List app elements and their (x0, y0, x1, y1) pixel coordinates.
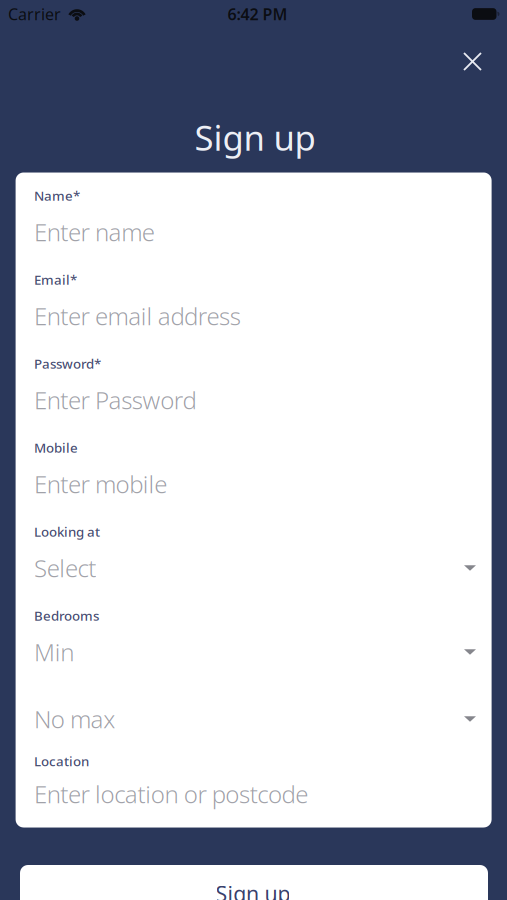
staticText: Enter mobile (34, 468, 167, 500)
staticText: Password* (34, 355, 101, 372)
staticText: Sign up (216, 879, 290, 900)
staticText: Enter name (34, 216, 155, 248)
staticText: Mobile (34, 439, 78, 456)
staticText: Enter Password (34, 384, 196, 416)
staticText: Looking at (34, 523, 100, 540)
staticText: Select (34, 552, 96, 584)
staticText: Sign up (194, 114, 315, 160)
staticText: Location (34, 752, 89, 770)
staticText: 6:42 PM (227, 3, 287, 25)
staticText: Enter email address (34, 300, 241, 332)
staticText: Email* (34, 271, 77, 288)
staticText: Name* (34, 187, 80, 204)
staticText: No max (34, 703, 115, 735)
staticText: Bedrooms (34, 607, 99, 624)
staticText: Min (34, 636, 74, 668)
staticText: Enter location or postcode (34, 778, 308, 810)
staticText: Carrier (8, 3, 61, 25)
